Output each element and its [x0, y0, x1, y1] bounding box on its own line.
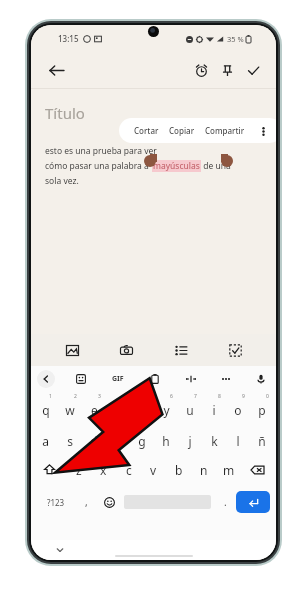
button[interactable]: f [106, 423, 130, 454]
button[interactable]: v [141, 454, 166, 485]
staticText: v [150, 462, 157, 478]
button[interactable]: Cortar [134, 125, 159, 136]
staticText: Copiar [169, 125, 195, 136]
staticText: j [188, 433, 192, 449]
button[interactable]: Checklist [168, 337, 194, 363]
staticText: 8 [218, 393, 221, 400]
staticText: e [91, 402, 98, 418]
button[interactable]: Back [37, 370, 55, 388]
button[interactable]: GIF [107, 370, 129, 388]
button[interactable]: Back [43, 57, 69, 83]
staticText: u [186, 402, 194, 418]
button[interactable]: Shift [33, 454, 66, 485]
staticText: a [42, 433, 49, 449]
staticText: z [76, 462, 82, 478]
button[interactable]: g [130, 423, 154, 454]
button[interactable]: . [214, 485, 236, 519]
staticText: x [100, 462, 107, 478]
button[interactable]: , [75, 485, 97, 519]
button[interactable]: Pin [214, 57, 240, 83]
button[interactable]: Enter [236, 491, 270, 513]
staticText: s [67, 433, 73, 449]
staticText: i [212, 402, 216, 418]
staticText: ñ [258, 433, 266, 449]
staticText: d [90, 433, 98, 449]
staticText: de una [201, 160, 231, 172]
button[interactable]: Emoji [97, 485, 121, 519]
button[interactable]: 1 [33, 392, 58, 423]
staticText: Título [45, 103, 85, 123]
button[interactable]: l [226, 423, 250, 454]
staticText: mayúsculas [153, 160, 200, 172]
staticText: h [162, 433, 170, 449]
button[interactable]: j [178, 423, 202, 454]
button[interactable]: ?123 [37, 485, 75, 519]
staticText: 1 [49, 393, 52, 400]
staticText: b [175, 462, 183, 478]
button[interactable]: d [82, 423, 106, 454]
staticText: n [200, 462, 208, 478]
button[interactable]: Hide keyboard [53, 543, 67, 557]
staticText: g [138, 433, 146, 449]
button[interactable]: Copiar [169, 125, 195, 136]
button[interactable]: b [166, 454, 191, 485]
staticText: Cortar [134, 125, 159, 136]
button[interactable]: c [116, 454, 141, 485]
button[interactable]: 9 [226, 392, 250, 423]
staticText: . [224, 495, 227, 509]
button[interactable]: Voice input [252, 370, 270, 388]
staticText: , [85, 495, 88, 509]
button[interactable]: s [58, 423, 82, 454]
button[interactable]: 7 [178, 392, 202, 423]
staticText: p [258, 402, 266, 418]
button[interactable]: 8 [202, 392, 226, 423]
button[interactable]: Reminder [188, 57, 214, 83]
staticText: 4 [122, 393, 125, 400]
staticText: y [163, 402, 170, 418]
staticText: cómo pasar una palabra a [45, 160, 152, 172]
staticText: 7 [194, 393, 197, 400]
staticText: k [211, 433, 218, 449]
staticText: 13:15 [58, 33, 79, 44]
staticText: 3 [98, 393, 101, 400]
button[interactable]: Clipboard [146, 370, 164, 388]
staticText: o [234, 402, 242, 418]
button[interactable]: ñ [250, 423, 274, 454]
button[interactable]: 4 [106, 392, 130, 423]
staticText: 2 [74, 393, 77, 400]
button[interactable]: a [33, 423, 58, 454]
button[interactable]: Cursor control [182, 370, 200, 388]
staticText: m [223, 462, 235, 478]
staticText: 0 [266, 393, 269, 400]
button[interactable]: x [91, 454, 116, 485]
button[interactable]: n [191, 454, 216, 485]
staticText: esto es una prueba para ver [45, 145, 157, 157]
button[interactable]: 2 [58, 392, 82, 423]
button[interactable]: Compartir [205, 125, 245, 136]
button[interactable]: m [216, 454, 241, 485]
button[interactable]: Select [222, 337, 248, 363]
button[interactable]: Backspace [241, 454, 274, 485]
button[interactable]: h [154, 423, 178, 454]
button[interactable]: More options [256, 124, 270, 138]
staticText: 9 [242, 393, 245, 400]
staticText: c [126, 462, 132, 478]
staticText: sola vez. [45, 175, 79, 187]
staticText: f [116, 433, 121, 449]
button[interactable]: k [202, 423, 226, 454]
staticText: ?123 [47, 497, 65, 508]
button[interactable]: Camera [113, 337, 139, 363]
button[interactable]: 5 [130, 392, 154, 423]
button[interactable]: More [217, 370, 235, 388]
button[interactable]: z [66, 454, 91, 485]
button[interactable]: Stickers [72, 370, 90, 388]
button[interactable]: Save [240, 57, 266, 83]
button[interactable]: 3 [82, 392, 106, 423]
button[interactable]: 6 [154, 392, 178, 423]
button[interactable]: Insert image [59, 337, 85, 363]
staticText: Compartir [205, 125, 245, 136]
button[interactable]: 0 [250, 392, 274, 423]
staticText: 6 [170, 393, 173, 400]
